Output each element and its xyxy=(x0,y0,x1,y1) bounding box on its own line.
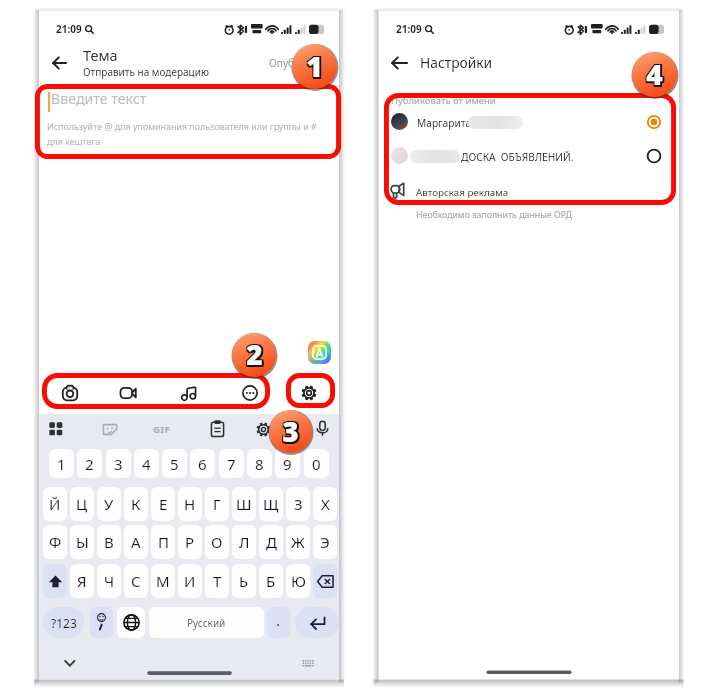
button[interactable]: Ь xyxy=(232,564,256,598)
button[interactable]: Emoji comma xyxy=(90,607,113,638)
staticText: 3 xyxy=(282,414,299,452)
staticText: 4 xyxy=(648,55,665,93)
button[interactable]: М xyxy=(151,564,175,598)
button[interactable]: Enter xyxy=(295,607,339,638)
staticText: 3 xyxy=(284,414,301,452)
staticText: М xyxy=(156,571,170,591)
button[interactable]: Ц xyxy=(70,487,94,521)
staticText: 3 xyxy=(282,412,299,450)
button[interactable]: И xyxy=(178,564,202,598)
staticText: Р xyxy=(185,532,195,552)
button[interactable]: 8 xyxy=(247,449,272,478)
button[interactable]: Settings xyxy=(254,420,273,439)
button[interactable]: Video xyxy=(114,378,144,408)
button[interactable]: Щ xyxy=(259,487,283,521)
button[interactable]: 3 xyxy=(106,449,131,478)
button[interactable]: Н xyxy=(178,487,202,521)
button[interactable]: Ф xyxy=(43,525,67,559)
staticText: Л xyxy=(239,532,250,552)
staticText: С xyxy=(131,571,141,591)
staticText: Ю xyxy=(291,571,306,591)
staticText: 3 xyxy=(281,411,298,449)
button[interactable]: Ю xyxy=(286,564,310,598)
staticText: Ч xyxy=(104,571,115,591)
button[interactable]: 2 xyxy=(77,449,102,478)
staticText: 2 xyxy=(245,335,262,373)
staticText: Введите текст xyxy=(51,89,147,108)
staticText: 4 xyxy=(645,54,662,92)
staticText: 4 xyxy=(645,55,662,93)
staticText: Тема xyxy=(83,45,118,65)
button[interactable]: Й xyxy=(43,487,67,521)
button[interactable]: Apps xyxy=(47,420,66,439)
button[interactable]: ДОСКА ОБЪЯВЛЕНИЙ. xyxy=(379,146,679,173)
staticText: 2 xyxy=(248,337,265,375)
staticText: Отправить на модерацию xyxy=(83,65,209,79)
button[interactable]: 7 xyxy=(219,449,244,478)
button[interactable]: 1 xyxy=(49,449,74,478)
button[interactable]: Ж xyxy=(286,525,310,559)
button[interactable]: Е xyxy=(151,487,175,521)
button[interactable]: 9 xyxy=(275,449,300,478)
staticText: 1 xyxy=(305,47,322,85)
button[interactable]: ?123 xyxy=(43,607,84,638)
button[interactable]: Ы xyxy=(70,525,94,559)
button[interactable]: More xyxy=(235,378,265,408)
button[interactable]: Back xyxy=(47,50,73,76)
staticText: Используйте @ для упоминания пользовател… xyxy=(47,120,339,147)
button[interactable]: Settings xyxy=(294,378,324,408)
button[interactable]: Р xyxy=(178,525,202,559)
button[interactable]: Ш xyxy=(232,487,256,521)
button[interactable]: Опубликовать xyxy=(269,56,333,74)
button[interactable]: Д xyxy=(259,525,283,559)
button[interactable]: Music xyxy=(176,378,206,408)
button[interactable]: Г xyxy=(205,487,229,521)
button[interactable]: Back xyxy=(387,50,413,76)
staticText: Публиковать от имени xyxy=(391,94,496,107)
staticText: З xyxy=(294,494,303,514)
staticText: Ь xyxy=(239,571,249,591)
button[interactable]: С xyxy=(124,564,148,598)
button[interactable]: Т xyxy=(205,564,229,598)
button[interactable]: Shift xyxy=(43,564,67,598)
button[interactable]: Backspace xyxy=(313,564,337,598)
button[interactable]: О xyxy=(205,525,229,559)
button[interactable]: Clipboard xyxy=(208,419,227,438)
button[interactable]: Camera xyxy=(55,378,85,408)
button[interactable]: Л xyxy=(232,525,256,559)
button[interactable]: Э xyxy=(313,525,337,559)
button[interactable]: Б xyxy=(259,564,283,598)
staticText: 3 xyxy=(281,414,298,452)
staticText: Х xyxy=(321,494,330,514)
button[interactable]: 6 xyxy=(190,449,215,478)
staticText: Маргарита xyxy=(417,116,472,130)
button[interactable]: Маргарита xyxy=(379,112,679,139)
button[interactable]: Ч xyxy=(97,564,121,598)
staticText: 4 xyxy=(648,54,665,92)
button[interactable]: Русский xyxy=(149,607,264,638)
button[interactable]: Language xyxy=(117,607,145,638)
button[interactable]: П xyxy=(151,525,175,559)
staticText: 3 xyxy=(114,454,123,474)
button[interactable]: А xyxy=(124,525,148,559)
button[interactable]: Авторская реклама xyxy=(379,179,679,207)
button[interactable]: Х xyxy=(313,487,337,521)
button[interactable]: Stickers xyxy=(101,420,120,439)
staticText: Необходимо заполнить данные ОРД xyxy=(416,209,572,221)
button[interactable]: Voice input xyxy=(313,419,332,438)
button[interactable]: З xyxy=(286,487,310,521)
button[interactable]: 4 xyxy=(134,449,159,478)
staticText: 7 xyxy=(227,454,236,474)
button[interactable]: В xyxy=(97,525,121,559)
staticText: 4 xyxy=(645,57,662,95)
button[interactable]: 5 xyxy=(162,449,187,478)
staticText: И xyxy=(184,571,196,591)
button[interactable]: 0 xyxy=(304,449,329,478)
button[interactable]: К xyxy=(124,487,148,521)
button[interactable]: У xyxy=(97,487,121,521)
button[interactable]: Я xyxy=(70,564,94,598)
staticText: 8 xyxy=(255,454,264,474)
button[interactable]: . xyxy=(267,607,290,638)
staticText: А xyxy=(131,532,141,552)
staticText: 2 xyxy=(245,337,262,375)
